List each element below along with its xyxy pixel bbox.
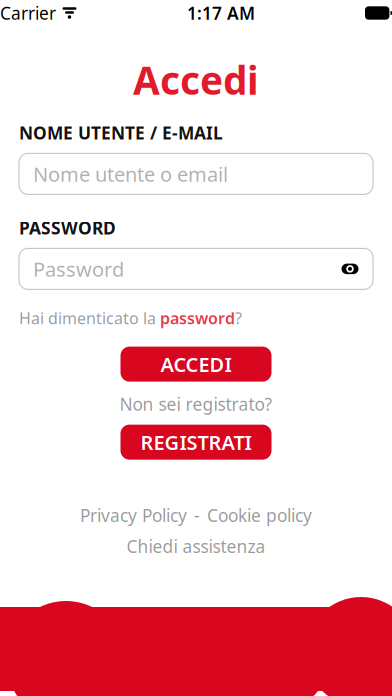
button[interactable]: Cookie policy: [207, 504, 312, 527]
button[interactable]: Nome utente o email: [19, 153, 373, 194]
staticText: [56, 0, 62, 28]
staticText: -: [194, 504, 200, 527]
button[interactable]: Password: [19, 248, 373, 289]
staticText: PASSWORD: [19, 216, 116, 239]
staticText: Nome utente o email: [33, 161, 228, 187]
staticText: NOME UTENTE / E-MAIL: [19, 121, 223, 144]
staticText: password: [160, 307, 235, 329]
staticText: REGISTRATI: [140, 429, 251, 455]
button[interactable]: REGISTRATI: [120, 425, 271, 460]
staticText: Accedi: [133, 54, 259, 105]
staticText: ACCEDI: [160, 351, 231, 377]
staticText: Hai dimenticato la: [19, 307, 160, 329]
button[interactable]: Privacy Policy: [80, 504, 187, 527]
staticText: 1:17 AM: [187, 1, 255, 24]
staticText: Chiedi assistenza: [126, 535, 265, 558]
staticText: Privacy Policy: [80, 504, 187, 527]
staticText: Non sei registrato?: [119, 393, 272, 416]
staticText: ?: [235, 307, 242, 329]
button[interactable]: ACCEDI: [120, 347, 271, 382]
button[interactable]: Chiedi assistenza: [126, 535, 265, 558]
staticText: Password: [33, 256, 124, 282]
staticText: Cookie policy: [207, 504, 312, 527]
staticText: Carrier: [0, 1, 56, 24]
button[interactable]: Hai dimenticato la: [19, 289, 242, 333]
